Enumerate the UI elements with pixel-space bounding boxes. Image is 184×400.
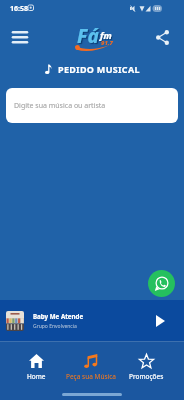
button[interactable] xyxy=(148,270,175,297)
staticText: fm xyxy=(100,29,112,41)
staticText: Home xyxy=(27,372,46,381)
staticText: Grupo Envolvencia xyxy=(33,323,77,330)
staticText: 16:58 xyxy=(10,4,28,14)
staticText: Digite sua música ou artista xyxy=(14,101,106,111)
button[interactable]: Home xyxy=(8,341,64,386)
button[interactable]: Peça sua Música xyxy=(63,341,119,386)
button[interactable]: Baby Me Atende xyxy=(0,300,184,341)
button[interactable]: Promoções xyxy=(118,341,174,386)
button[interactable] xyxy=(150,26,174,48)
button[interactable] xyxy=(6,26,34,48)
staticText: PEDIDO MUSICAL xyxy=(58,63,140,75)
staticText: 91.7 xyxy=(101,39,113,47)
staticText: Fá xyxy=(77,23,99,49)
staticText: Promoções xyxy=(129,372,164,381)
button[interactable]: Digite sua música ou artista xyxy=(6,88,178,123)
staticText: Peça sua Música xyxy=(66,372,116,381)
staticText: Baby Me Atende xyxy=(33,312,84,320)
